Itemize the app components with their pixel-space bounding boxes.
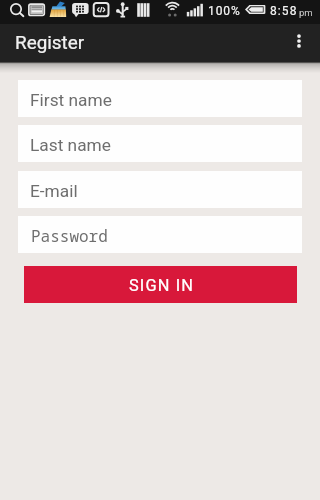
button[interactable]: Last name	[18, 125, 302, 162]
staticText: Register	[15, 31, 85, 53]
staticText: SIGN IN	[129, 276, 194, 295]
button[interactable]: Password	[18, 216, 302, 253]
button[interactable]: First name	[18, 80, 302, 117]
staticText: 8:58	[270, 4, 298, 18]
staticText: First name	[30, 90, 112, 110]
staticText: 100%	[208, 4, 241, 18]
staticText: Last name	[30, 135, 111, 155]
staticText: E-mail	[30, 181, 78, 201]
button[interactable]: E-mail	[18, 171, 302, 208]
staticText: Password	[31, 225, 108, 247]
staticText: pm	[299, 7, 313, 18]
button[interactable]: More options	[283, 24, 320, 62]
button[interactable]: SIGN IN	[24, 266, 297, 303]
